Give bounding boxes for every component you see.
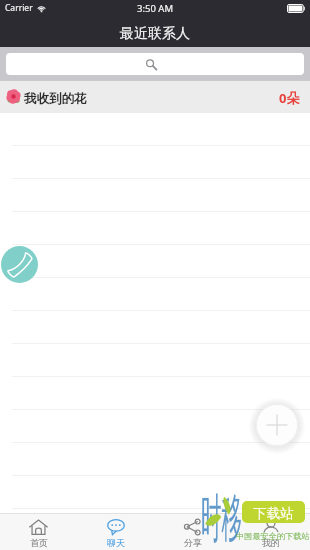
button[interactable]: Add <box>256 404 298 446</box>
button[interactable] <box>0 278 310 311</box>
staticText: 3:50 AM <box>137 2 174 15</box>
button[interactable]: 聊天 <box>77 514 154 550</box>
button[interactable]: Search <box>6 53 304 75</box>
button[interactable] <box>0 443 310 476</box>
button[interactable] <box>0 245 310 278</box>
staticText: 首页 <box>30 537 48 548</box>
button[interactable] <box>0 476 310 509</box>
button[interactable]: 首页 <box>0 514 77 550</box>
staticText: 聊天 <box>107 537 125 548</box>
button[interactable]: 分享 <box>154 514 232 550</box>
staticText: 我的 <box>262 537 280 548</box>
staticText: 中国最安全的下载站 <box>236 531 310 541</box>
button[interactable]: 我收到的花 <box>0 81 310 113</box>
staticText: 0朵 <box>279 89 300 107</box>
staticText: 最近联系人 <box>120 25 190 43</box>
button[interactable]: 我的 <box>232 514 310 550</box>
staticText: 时移 <box>201 487 242 550</box>
staticText: Carrier <box>5 2 33 14</box>
button[interactable]: Call <box>1 246 38 283</box>
staticText: 下载站 <box>253 505 294 522</box>
button[interactable] <box>0 410 310 443</box>
staticText: 分享 <box>184 537 202 548</box>
staticText: 我收到的花 <box>24 91 87 107</box>
